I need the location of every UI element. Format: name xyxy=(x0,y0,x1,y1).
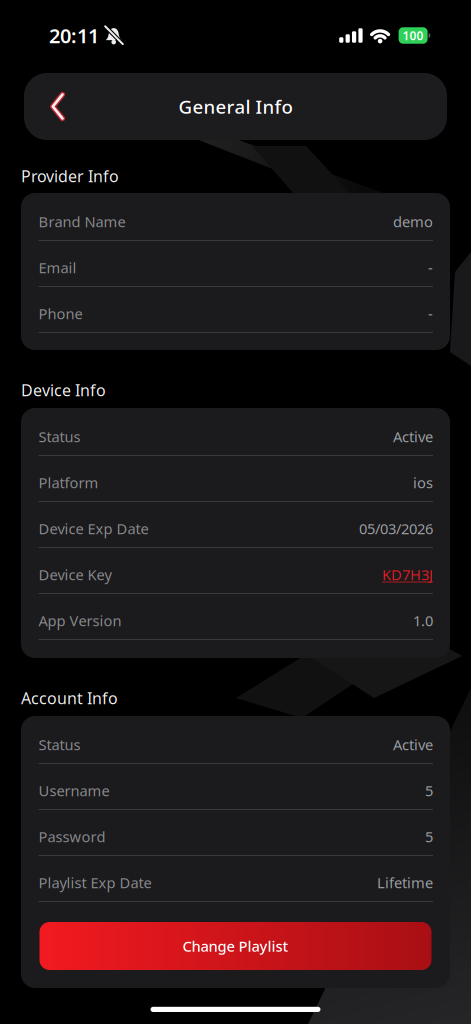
staticText: Password xyxy=(38,827,105,846)
staticText: Playlist Exp Date xyxy=(38,873,151,892)
staticText: ios xyxy=(413,473,433,492)
staticText: 5 xyxy=(425,827,433,846)
staticText: Provider Info xyxy=(21,165,119,187)
staticText: Status xyxy=(38,427,80,446)
staticText: - xyxy=(428,258,433,277)
staticText: Platform xyxy=(38,473,98,492)
staticText: App Version xyxy=(38,611,121,630)
staticText: Brand Name xyxy=(38,212,125,231)
staticText: Change Playlist xyxy=(182,936,288,956)
staticText: demo xyxy=(393,212,433,231)
staticText: Device Key xyxy=(38,565,111,584)
staticText: Device Info xyxy=(21,379,106,401)
button[interactable]: Back xyxy=(24,73,81,140)
staticText: Username xyxy=(38,781,109,800)
staticText: Device Exp Date xyxy=(38,519,148,538)
staticText: Status xyxy=(38,735,80,754)
staticText: Email xyxy=(38,258,76,277)
staticText: KD7H3J xyxy=(382,565,433,584)
staticText: Account Info xyxy=(21,687,118,709)
staticText: Active xyxy=(393,427,433,446)
staticText: General Info xyxy=(178,94,292,119)
staticText: 05/03/2026 xyxy=(359,519,433,538)
staticText: 20:11 xyxy=(49,22,99,49)
staticText: Active xyxy=(393,735,433,754)
staticText: 5 xyxy=(425,781,433,800)
button[interactable]: KD7H3J xyxy=(382,565,433,584)
staticText: 100 xyxy=(403,27,424,43)
staticText: 1.0 xyxy=(413,611,433,630)
staticText: Lifetime xyxy=(377,873,433,892)
staticText: - xyxy=(428,304,433,323)
button[interactable]: Change Playlist xyxy=(39,922,431,970)
staticText: Phone xyxy=(38,304,82,323)
